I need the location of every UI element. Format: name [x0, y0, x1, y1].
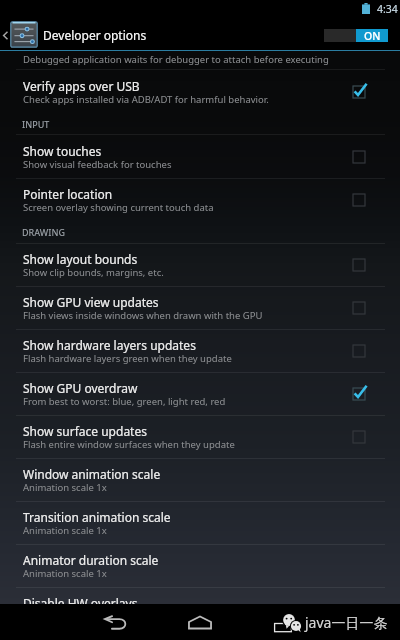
button[interactable]: [0, 286, 400, 329]
staticText: INPUT: [22, 118, 50, 130]
button[interactable]: [0, 544, 400, 587]
button[interactable]: [0, 458, 400, 501]
button[interactable]: Pointer location: [335, 178, 385, 221]
button[interactable]: Show surface updates: [335, 415, 385, 458]
button[interactable]: Verify apps over USB: [335, 70, 385, 113]
staticText: 4:34: [377, 2, 398, 16]
staticText: Show clip bounds, margins, etc.: [23, 266, 353, 279]
staticText: Screen overlay showing current touch dat…: [23, 201, 353, 214]
staticText: Show visual feedback for touches: [23, 158, 353, 171]
button[interactable]: [0, 329, 400, 372]
button[interactable]: [0, 135, 400, 178]
button[interactable]: [0, 587, 400, 630]
button[interactable]: [0, 178, 400, 221]
staticText: Check apps installed via ADB/ADT for har…: [23, 93, 353, 106]
button[interactable]: Back: [97, 604, 133, 640]
button[interactable]: Navigate up: [0, 19, 10, 51]
button[interactable]: Show GPU view updates: [335, 286, 385, 329]
staticText: Flash views inside windows when drawn wi…: [23, 309, 353, 322]
staticText: ON: [364, 29, 381, 42]
staticText: DRAWING: [22, 226, 65, 238]
staticText: Pointer location: [23, 186, 341, 202]
staticText: Show touches: [23, 143, 341, 159]
staticText: Animation scale 1x: [23, 524, 353, 537]
button[interactable]: Home: [182, 604, 218, 640]
button[interactable]: Developer options icon: [10, 21, 38, 48]
button[interactable]: [0, 415, 400, 458]
staticText: java一日一条: [305, 613, 388, 632]
button[interactable]: Show hardware layers updates: [335, 329, 385, 372]
staticText: Show hardware layers updates: [23, 337, 341, 353]
button[interactable]: [0, 372, 400, 415]
staticText: Animation scale 1x: [23, 567, 353, 580]
staticText: Show surface updates: [23, 423, 341, 439]
button[interactable]: Show touches: [335, 135, 385, 178]
staticText: Animator duration scale: [23, 552, 341, 568]
staticText: Flash entire window surfaces when they u…: [23, 438, 353, 451]
staticText: Developer options: [43, 27, 147, 43]
staticText: Verify apps over USB: [23, 78, 341, 94]
button[interactable]: [0, 243, 400, 286]
button[interactable]: Show GPU overdraw: [335, 372, 385, 415]
staticText: From best to worst: blue, green, light r…: [23, 395, 353, 408]
staticText: Transition animation scale: [23, 509, 341, 525]
button[interactable]: [0, 501, 400, 544]
staticText: Disable HW overlays: [23, 595, 341, 611]
staticText: Window animation scale: [23, 466, 341, 482]
button[interactable]: Developer options switch, on: [324, 29, 388, 42]
button[interactable]: [0, 70, 400, 113]
staticText: Show GPU view updates: [23, 294, 341, 310]
button[interactable]: Show layout bounds: [335, 243, 385, 286]
staticText: Show GPU overdraw: [23, 380, 341, 396]
staticText: Animation scale 1x: [23, 481, 353, 494]
staticText: Flash hardware layers green when they up…: [23, 352, 353, 365]
staticText: Debugged application waits for debugger …: [23, 53, 329, 66]
staticText: Show layout bounds: [23, 251, 341, 267]
